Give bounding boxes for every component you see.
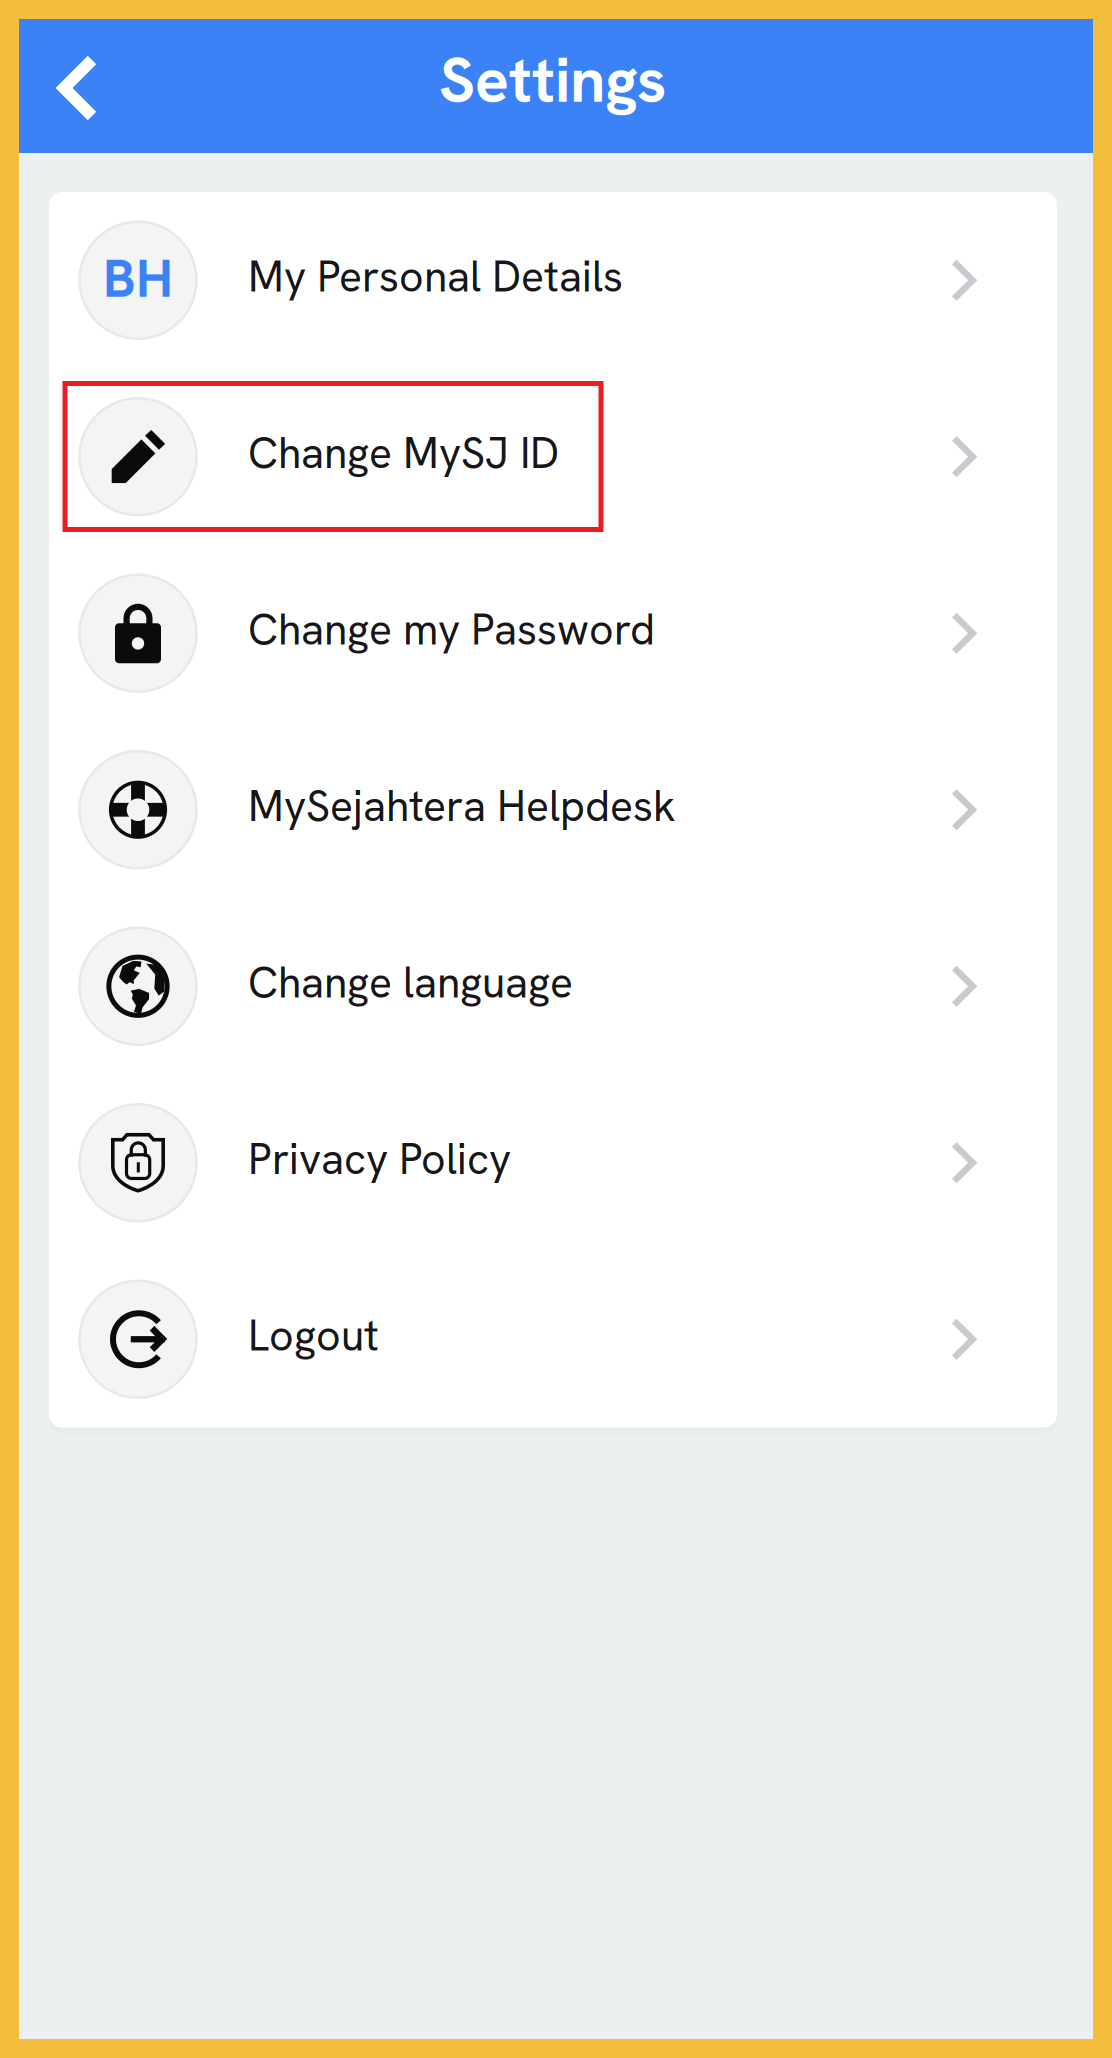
staticText: Change MySJ ID xyxy=(248,425,559,481)
staticText: MySejahtera Helpdesk xyxy=(248,778,676,834)
button[interactable]: MySejahtera Helpdesk xyxy=(49,721,1057,898)
staticText: Change language xyxy=(248,955,573,1011)
staticText: My Personal Details xyxy=(248,249,623,305)
staticText: BH xyxy=(103,243,173,313)
button[interactable]: Change MySJ ID xyxy=(49,368,1057,545)
button[interactable]: Logout xyxy=(49,1251,1057,1427)
staticText: Logout xyxy=(248,1308,379,1364)
button[interactable]: Privacy Policy xyxy=(49,1074,1057,1251)
button[interactable]: Change language xyxy=(49,898,1057,1074)
button[interactable]: BH xyxy=(49,192,1057,368)
button[interactable]: Change my Password xyxy=(49,545,1057,721)
staticText: Change my Password xyxy=(248,602,655,658)
staticText: Settings xyxy=(439,39,667,121)
button[interactable]: Back xyxy=(19,19,122,153)
staticText: Privacy Policy xyxy=(248,1131,511,1187)
